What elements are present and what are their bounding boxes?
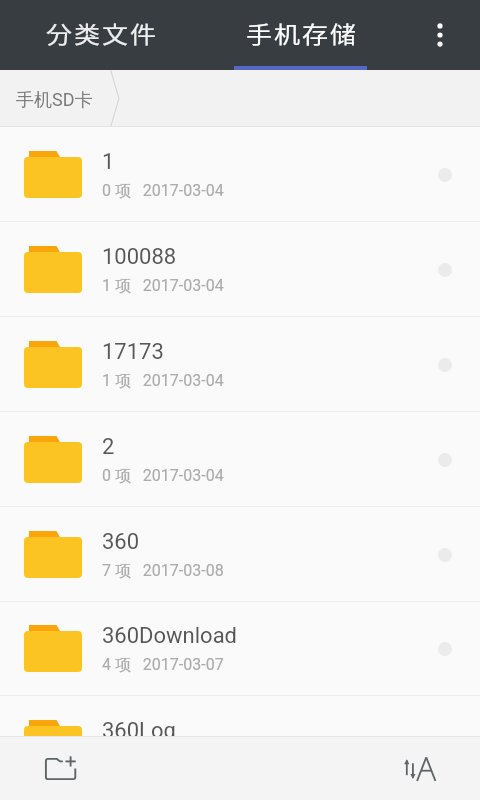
- staticText: 360: [102, 529, 140, 555]
- staticText: 1: [102, 149, 115, 175]
- button[interactable]: 手机存储: [200, 0, 400, 70]
- button[interactable]: 17173: [0, 317, 480, 412]
- staticText: 100088: [102, 244, 177, 270]
- staticText: 1 项 2017-03-04: [102, 371, 224, 391]
- button[interactable]: Select item: [421, 531, 469, 579]
- button[interactable]: Select item: [421, 436, 469, 484]
- button[interactable]: 分类文件: [0, 0, 200, 70]
- button[interactable]: 100088: [0, 222, 480, 317]
- staticText: 4 项 2017-03-07: [102, 655, 224, 675]
- button[interactable]: 360: [0, 507, 480, 602]
- button[interactable]: Select item: [421, 246, 469, 294]
- button[interactable]: Select item: [421, 341, 469, 389]
- staticText: 0 项 2017-03-04: [102, 466, 224, 486]
- button[interactable]: 手机SD卡: [0, 70, 480, 127]
- staticText: 0 项 2017-03-04: [102, 181, 224, 201]
- staticText: 360Log: [102, 718, 176, 736]
- staticText: 手机SD卡: [16, 89, 93, 112]
- button[interactable]: 360Log: [0, 696, 480, 736]
- staticText: 360Download: [102, 623, 238, 649]
- button[interactable]: 360Download: [0, 601, 480, 696]
- button[interactable]: Select item: [421, 625, 469, 673]
- staticText: 17173: [102, 339, 164, 365]
- button[interactable]: 2: [0, 412, 480, 507]
- staticText: 分类文件: [46, 18, 159, 50]
- staticText: 1 项 2017-03-04: [102, 276, 224, 296]
- button[interactable]: 1: [0, 127, 480, 222]
- button[interactable]: Sort: [360, 736, 480, 800]
- button[interactable]: More options: [400, 0, 480, 70]
- button[interactable]: Select item: [421, 151, 469, 199]
- staticText: 手机存储: [246, 18, 359, 50]
- staticText: 2: [102, 434, 115, 460]
- staticText: 7 项 2017-03-08: [102, 561, 224, 581]
- button[interactable]: New folder: [0, 736, 120, 800]
